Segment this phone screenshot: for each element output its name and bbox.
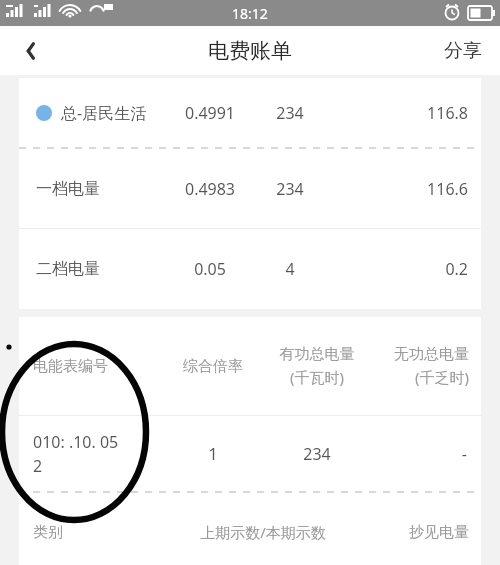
- staticText: 18:12: [232, 4, 268, 23]
- button[interactable]: 一档电量: [19, 149, 481, 228]
- staticText: 0.4983: [169, 178, 251, 200]
- button[interactable]: 分享: [426, 26, 500, 75]
- staticText: 1: [159, 443, 267, 465]
- staticText: 4: [251, 258, 329, 280]
- button[interactable]: Back: [0, 26, 62, 75]
- staticText: 0.2: [329, 258, 468, 280]
- button[interactable]: 010: .10. 05 2: [19, 416, 481, 491]
- button[interactable]: 总-居民生活: [19, 78, 481, 147]
- staticText: 电费账单: [208, 38, 292, 64]
- staticText: 一档电量: [36, 179, 169, 199]
- staticText: 234: [251, 102, 329, 124]
- staticText: 116.6: [329, 178, 468, 200]
- staticText: 分享: [444, 39, 482, 63]
- staticText: 类别: [33, 523, 159, 542]
- staticText: 总-居民生活: [61, 102, 169, 124]
- staticText: 0.05: [169, 258, 251, 280]
- staticText: 抄见电量: [367, 523, 469, 542]
- staticText: -: [367, 443, 467, 465]
- button[interactable]: 二档电量: [19, 229, 481, 309]
- staticText: 有功总电量 (千瓦时): [267, 345, 367, 388]
- staticText: 010: .10. 05 2: [33, 431, 159, 477]
- staticText: 电能表编号: [33, 357, 159, 376]
- staticText: 综合倍率: [159, 357, 267, 376]
- staticText: 上期示数/本期示数: [159, 522, 367, 542]
- staticText: 234: [251, 178, 329, 200]
- staticText: 无功总电量 (千乏时): [367, 345, 469, 388]
- staticText: 0.4991: [169, 102, 251, 124]
- staticText: 二档电量: [36, 259, 169, 279]
- staticText: 116.8: [329, 102, 468, 124]
- staticText: 234: [267, 443, 367, 465]
